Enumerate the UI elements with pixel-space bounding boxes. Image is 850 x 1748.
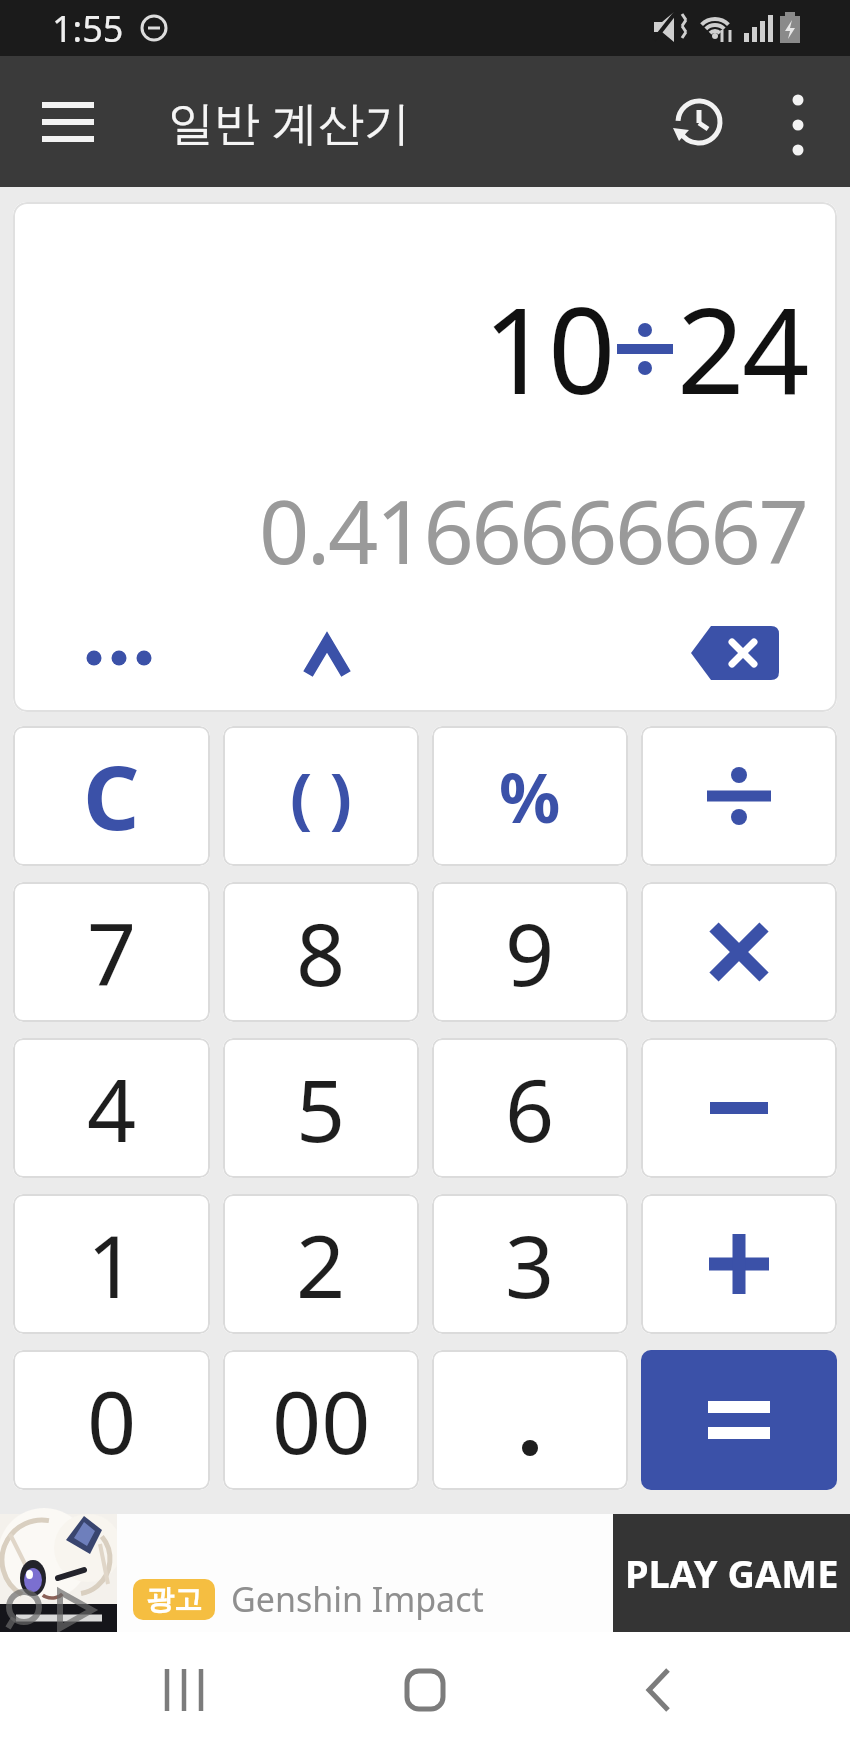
button[interactable]: % <box>432 726 628 866</box>
button[interactable] <box>385 1650 465 1730</box>
button[interactable]: 5 <box>223 1038 419 1178</box>
button[interactable]: 0 <box>13 1350 210 1490</box>
button[interactable] <box>641 726 837 866</box>
staticText: 8 <box>296 894 346 1011</box>
button[interactable]: 3 <box>432 1194 628 1334</box>
button[interactable] <box>144 1650 224 1730</box>
button[interactable] <box>770 94 826 150</box>
staticText: 24 <box>677 268 807 429</box>
button[interactable] <box>618 1650 698 1730</box>
button[interactable]: 7 <box>13 882 210 1022</box>
button[interactable] <box>641 882 837 1022</box>
button[interactable]: 00 <box>223 1350 419 1490</box>
staticText: 6 <box>505 1050 555 1167</box>
staticText: 1:55 <box>52 4 124 53</box>
button[interactable]: PLAY GAME <box>613 1514 850 1632</box>
button[interactable] <box>285 626 369 686</box>
button[interactable] <box>685 618 785 688</box>
staticText: 일반 계산기 <box>168 90 410 153</box>
staticText: 00 <box>272 1362 371 1479</box>
button[interactable]: 1 <box>13 1194 210 1334</box>
button[interactable]: 8 <box>223 882 419 1022</box>
staticText: 10 <box>483 268 613 429</box>
staticText: 5 <box>296 1050 346 1167</box>
staticText: Genshin Impact <box>231 1576 484 1622</box>
button[interactable] <box>28 82 108 162</box>
button[interactable]: 9 <box>432 882 628 1022</box>
staticText: 광고 <box>146 1582 202 1617</box>
staticText: 9 <box>505 894 555 1011</box>
button[interactable] <box>432 1350 628 1490</box>
staticText: 2 <box>296 1206 346 1323</box>
staticText: 3 <box>505 1206 555 1323</box>
staticText: 0.4166666667 <box>259 470 807 590</box>
staticText: 7 <box>87 894 137 1011</box>
button[interactable]: ( ) <box>223 726 419 866</box>
button[interactable]: 4 <box>13 1038 210 1178</box>
button[interactable] <box>641 1350 837 1490</box>
staticText: 1 <box>87 1206 137 1323</box>
button[interactable]: 광고 <box>0 1514 850 1632</box>
staticText: C <box>83 736 140 856</box>
button[interactable]: C <box>13 726 210 866</box>
button[interactable] <box>641 1194 837 1334</box>
staticText: % <box>499 750 561 843</box>
button[interactable] <box>664 87 734 157</box>
button[interactable] <box>641 1038 837 1178</box>
button[interactable] <box>64 633 174 683</box>
staticText: 4 <box>87 1050 137 1167</box>
staticText: ( ) <box>290 751 352 841</box>
button[interactable]: 6 <box>432 1038 628 1178</box>
staticText: 0 <box>87 1362 137 1479</box>
button[interactable]: 2 <box>223 1194 419 1334</box>
staticText: PLAY GAME <box>625 1547 839 1599</box>
